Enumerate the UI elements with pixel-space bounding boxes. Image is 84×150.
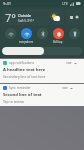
staticText: A headline text here (3, 67, 46, 73)
button[interactable]: 7° (2, 9, 64, 25)
staticText: LTE (62, 1, 68, 6)
staticText: Tap to review (3, 99, 24, 104)
staticText: 9:41 (3, 1, 11, 6)
button[interactable]: Bluetooth (34, 28, 50, 44)
button[interactable]: app notifications (0, 59, 84, 83)
staticText: Secondary line of text here (3, 74, 46, 79)
staticText: now (66, 61, 72, 65)
staticText: 7° (5, 10, 16, 25)
button[interactable]: Wi-Fi off (2, 28, 18, 44)
staticText: now (62, 86, 68, 90)
staticText: Sync reminder (9, 86, 31, 90)
staticText: Soft 5.3°/1° (18, 19, 34, 23)
staticText: Second line of text (3, 92, 42, 98)
button[interactable]: Sync reminder (0, 84, 84, 106)
button[interactable]: everywhere (18, 28, 34, 44)
button[interactable]: Brightness (2, 47, 82, 55)
button[interactable]: Settings (66, 9, 82, 25)
staticText: Outside (18, 13, 32, 18)
staticText: Bell top (53, 40, 63, 44)
button[interactable]: Do not disturb (50, 28, 66, 44)
staticText: everywhere (19, 40, 34, 44)
staticText: app notifications (9, 61, 35, 65)
button[interactable]: Flashlight (66, 28, 82, 44)
